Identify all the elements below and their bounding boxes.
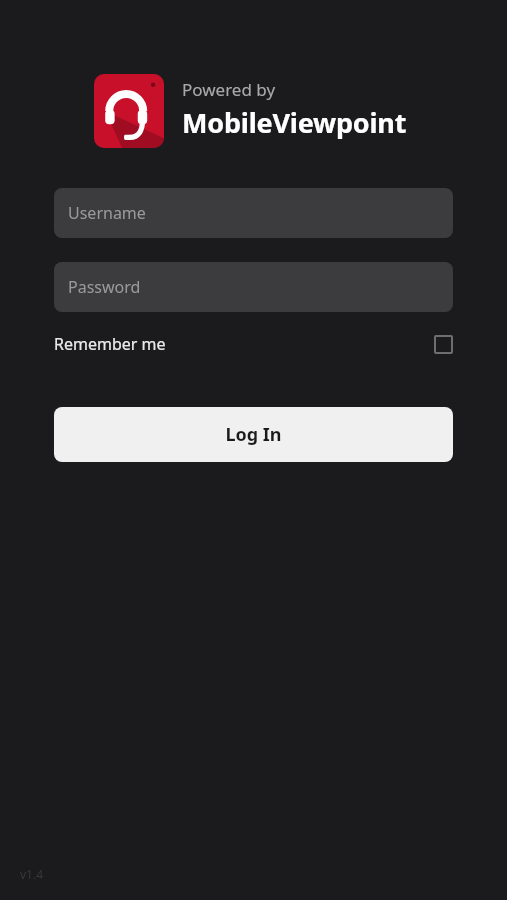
button[interactable]: Log In bbox=[54, 407, 453, 462]
staticText: Password bbox=[68, 276, 141, 298]
button[interactable]: Username bbox=[54, 188, 453, 238]
staticText: Remember me bbox=[54, 333, 166, 355]
button[interactable]: Password bbox=[54, 262, 453, 312]
staticText: v1.4 bbox=[20, 866, 44, 882]
staticText: Username bbox=[68, 202, 146, 224]
other: Remember me checkbox bbox=[434, 335, 453, 354]
staticText: MobileViewpoint bbox=[182, 104, 407, 141]
staticText: Powered by bbox=[182, 78, 276, 101]
staticText: Log In bbox=[225, 422, 282, 447]
button[interactable]: Remember me bbox=[54, 326, 453, 362]
other: MobileViewpoint logo bbox=[94, 74, 164, 148]
